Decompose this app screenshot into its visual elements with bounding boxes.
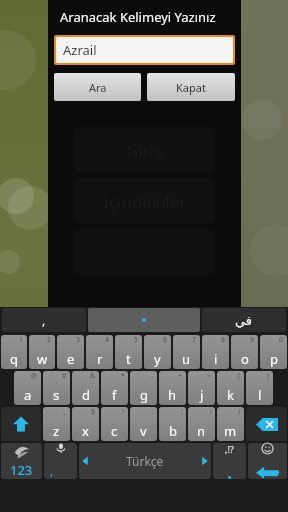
button[interactable]: Enter xyxy=(248,443,287,479)
staticText: Aranacak Kelimeyi Yazınız xyxy=(60,8,216,26)
staticText: e xyxy=(67,350,75,368)
staticText: y xyxy=(154,350,161,368)
button[interactable]: " xyxy=(101,407,128,441)
staticText: İçindekiler xyxy=(103,190,187,213)
button[interactable]: Punctuation xyxy=(213,443,246,479)
button[interactable]: 5 xyxy=(115,335,142,369)
staticText: i xyxy=(214,350,218,368)
button[interactable]: Türkçe xyxy=(79,443,211,479)
button[interactable]: 7 xyxy=(173,335,200,369)
button[interactable]: _ xyxy=(43,407,70,441)
button[interactable]: ( xyxy=(217,371,244,405)
staticText: # xyxy=(62,371,67,381)
staticText: " xyxy=(122,407,125,417)
staticText: c xyxy=(111,422,118,440)
button[interactable]: , xyxy=(2,308,86,332)
staticText: = xyxy=(207,371,212,381)
staticText: 6 xyxy=(163,335,168,345)
button[interactable]: 0 xyxy=(260,335,287,369)
staticText: 4 xyxy=(105,335,110,345)
staticText: : xyxy=(152,407,154,417)
staticText: q xyxy=(10,350,18,368)
staticText: في xyxy=(235,313,253,328)
staticText: Giriş xyxy=(126,139,163,162)
staticText: r xyxy=(97,350,103,368)
staticText: Azrail xyxy=(63,41,97,59)
staticText: $ xyxy=(91,407,96,417)
staticText: 1 xyxy=(19,335,24,345)
staticText: 7 xyxy=(192,335,197,345)
staticText: t xyxy=(126,350,131,368)
button[interactable]: 2 xyxy=(29,335,55,369)
staticText: d xyxy=(82,386,90,404)
button[interactable]: Voice input xyxy=(44,443,77,479)
staticText: 0 xyxy=(279,335,284,345)
staticText: s xyxy=(53,386,60,404)
button[interactable]: + xyxy=(159,371,186,405)
button[interactable]: & xyxy=(72,371,99,405)
button[interactable]: Azrail xyxy=(56,37,233,63)
button[interactable]: ) xyxy=(246,371,273,405)
staticText: ; xyxy=(181,407,183,417)
button[interactable]: 4 xyxy=(86,335,113,369)
staticText: - xyxy=(151,371,154,381)
button[interactable]: 6 xyxy=(144,335,171,369)
staticText: & xyxy=(90,371,96,381)
staticText: l xyxy=(258,386,262,404)
staticText: * xyxy=(121,371,125,381)
staticText: x xyxy=(82,422,89,440)
button[interactable]: @ xyxy=(14,371,41,405)
button[interactable]: # xyxy=(43,371,70,405)
staticText: ( xyxy=(238,371,241,381)
staticText: o xyxy=(241,350,249,368)
staticText: u xyxy=(182,350,191,368)
staticText: 8 xyxy=(221,335,226,345)
staticText: k xyxy=(227,386,234,404)
staticText: p xyxy=(270,350,278,368)
staticText: 5 xyxy=(134,335,139,345)
button[interactable]: / xyxy=(217,407,244,441)
staticText: 9 xyxy=(250,335,255,345)
staticText: , xyxy=(50,464,53,479)
button[interactable]: * xyxy=(101,371,128,405)
button[interactable]: = xyxy=(188,371,215,405)
button[interactable]: 3 xyxy=(57,335,84,369)
staticText: f xyxy=(112,386,117,404)
button[interactable]: ; xyxy=(159,407,186,441)
staticText: Türkçe xyxy=(126,453,164,469)
staticText: @ xyxy=(31,371,38,381)
button[interactable]: 8 xyxy=(202,335,229,369)
staticText: h xyxy=(168,386,177,404)
staticText: ,!? xyxy=(225,443,234,455)
button[interactable]: Shift xyxy=(1,407,41,441)
staticText: w xyxy=(37,350,48,368)
button[interactable]: Ara xyxy=(54,73,141,101)
staticText: 3 xyxy=(76,335,81,345)
staticText: ) xyxy=(267,371,270,381)
button[interactable]: $ xyxy=(72,407,99,441)
staticText: + xyxy=(178,371,183,381)
staticText: 123 xyxy=(10,461,33,479)
button[interactable]: Backspace xyxy=(246,407,287,441)
button[interactable]: Symbols 123 xyxy=(1,443,42,479)
button[interactable]: في xyxy=(202,308,286,332)
staticText: j xyxy=(200,386,204,404)
button[interactable]: : xyxy=(130,407,157,441)
button[interactable]: - xyxy=(130,371,157,405)
staticText: z xyxy=(53,422,60,440)
button[interactable]: 1 xyxy=(1,335,27,369)
staticText: n xyxy=(197,422,206,440)
button[interactable]: Kapat xyxy=(147,73,235,101)
staticText: v xyxy=(140,422,147,440)
staticText: 2 xyxy=(47,335,52,345)
staticText: b xyxy=(169,422,177,440)
button[interactable]: ! xyxy=(188,407,215,441)
button[interactable] xyxy=(88,308,200,332)
staticText: , xyxy=(42,312,46,328)
staticText: g xyxy=(140,386,148,404)
staticText: _ xyxy=(63,407,67,417)
button[interactable]: 9 xyxy=(231,335,258,369)
